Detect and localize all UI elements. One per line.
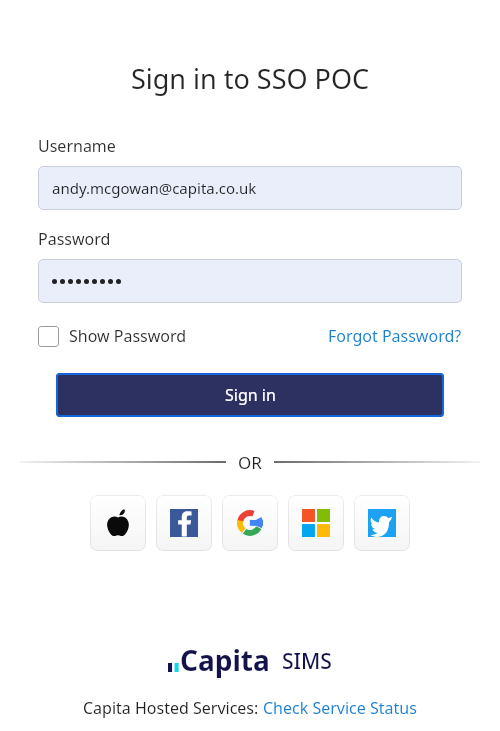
staticText: Username xyxy=(38,135,116,157)
button[interactable]: Sign in xyxy=(56,373,444,417)
staticText: OR xyxy=(238,451,262,474)
staticText: Sign in xyxy=(225,384,276,406)
button[interactable]: Sign in with Facebook xyxy=(156,495,212,551)
button[interactable]: Forgot Password? xyxy=(328,321,462,351)
staticText: Check Service Status xyxy=(263,697,417,719)
button[interactable]: Check Service Status xyxy=(263,697,417,719)
button[interactable]: Sign in with Twitter xyxy=(354,495,410,551)
button[interactable]: Show Password xyxy=(38,321,187,351)
button[interactable] xyxy=(38,259,462,303)
staticText: Password xyxy=(38,228,111,250)
button[interactable]: Sign in with Microsoft xyxy=(288,495,344,551)
staticText: Capita xyxy=(180,641,270,679)
button[interactable]: Sign in with Apple xyxy=(90,495,146,551)
staticText: Sign in to SSO POC xyxy=(0,60,500,97)
staticText: Capita Hosted Services: xyxy=(83,697,263,719)
button[interactable]: andy.mcgowan@capita.co.uk xyxy=(38,166,462,210)
staticText: SIMS xyxy=(282,647,332,676)
button[interactable]: Sign in with Google xyxy=(222,495,278,551)
staticText: Forgot Password? xyxy=(328,325,462,347)
staticText: Show Password xyxy=(69,325,187,347)
staticText: andy.mcgowan@capita.co.uk xyxy=(52,178,257,198)
